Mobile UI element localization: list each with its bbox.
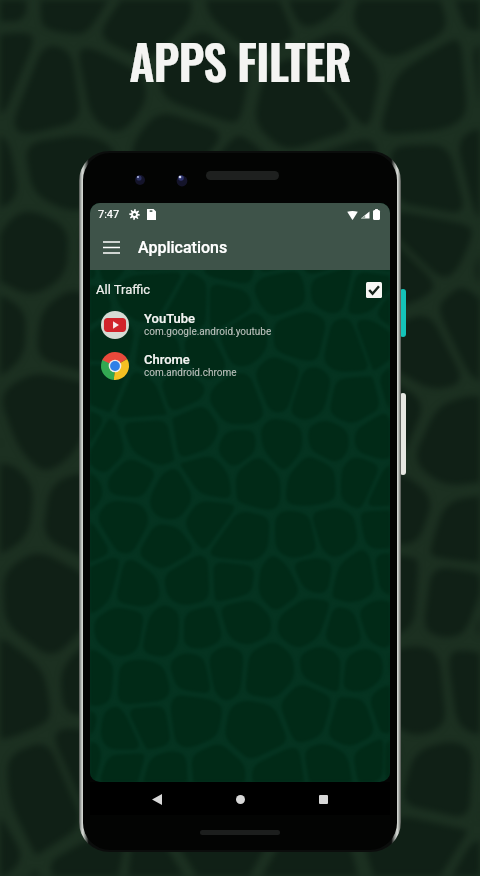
button[interactable]: Chrome — [90, 345, 390, 386]
staticText: com.google.android.youtube — [144, 326, 272, 338]
staticText: com.android.chrome — [144, 367, 237, 379]
button[interactable]: YouTube — [90, 304, 390, 345]
staticText: Chrome — [144, 352, 190, 367]
button[interactable]: Recent apps — [311, 787, 335, 811]
button[interactable]: Home — [228, 787, 252, 811]
staticText: All Traffic — [96, 282, 151, 297]
staticText: YouTube — [144, 311, 196, 326]
staticText: APPS FILTER — [129, 26, 351, 96]
staticText: Applications — [138, 238, 228, 257]
button[interactable]: All Traffic — [90, 278, 390, 301]
staticText: 7:47 — [98, 208, 120, 221]
button[interactable]: Open navigation menu — [90, 225, 132, 270]
button[interactable]: Back — [145, 787, 169, 811]
